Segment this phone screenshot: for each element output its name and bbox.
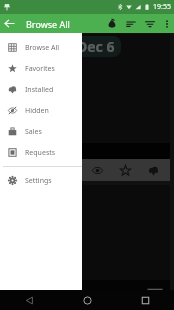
button[interactable]: Back bbox=[0, 14, 19, 33]
staticText: Sales bbox=[25, 127, 42, 137]
button[interactable]: Sales bbox=[0, 121, 82, 142]
staticText: Hidden bbox=[25, 106, 49, 116]
button[interactable]: Installed bbox=[0, 79, 82, 100]
staticText: Calls:0 | SMS:0 bbox=[14, 61, 63, 71]
staticText: 19:55 bbox=[153, 2, 171, 12]
staticText: Browse All bbox=[26, 18, 70, 30]
button[interactable]: Recents bbox=[116, 290, 174, 310]
staticText: Installed bbox=[25, 85, 54, 95]
staticText: Settings bbox=[25, 176, 52, 186]
button[interactable]: Back bbox=[0, 290, 58, 310]
button[interactable]: Filter bbox=[140, 14, 159, 33]
button[interactable]: Unread Messages bbox=[4, 185, 170, 310]
staticText: Unread Messages bbox=[10, 290, 69, 300]
staticText: Favorites bbox=[25, 64, 55, 74]
staticText: Requests bbox=[25, 148, 56, 158]
button[interactable]: More options bbox=[159, 16, 174, 31]
staticText: 20:57 Fri Dec 6 bbox=[12, 37, 115, 56]
button[interactable]: Download bbox=[142, 159, 164, 181]
button[interactable]: Requests bbox=[0, 142, 82, 163]
button[interactable]: Sort bbox=[121, 14, 140, 33]
button[interactable]: Settings bbox=[0, 170, 82, 191]
button[interactable]: 20:57 Fri Dec 6 bbox=[4, 34, 170, 181]
button[interactable]: Trending bbox=[102, 14, 121, 33]
button[interactable]: Favorite bbox=[114, 159, 136, 181]
button[interactable]: Home bbox=[58, 290, 116, 310]
staticText: Browse All bbox=[25, 43, 60, 53]
button[interactable]: Hidden bbox=[0, 100, 82, 121]
button[interactable]: Preview bbox=[86, 159, 108, 181]
button[interactable]: Favorites bbox=[0, 58, 82, 79]
button[interactable]: Browse All bbox=[0, 37, 82, 58]
